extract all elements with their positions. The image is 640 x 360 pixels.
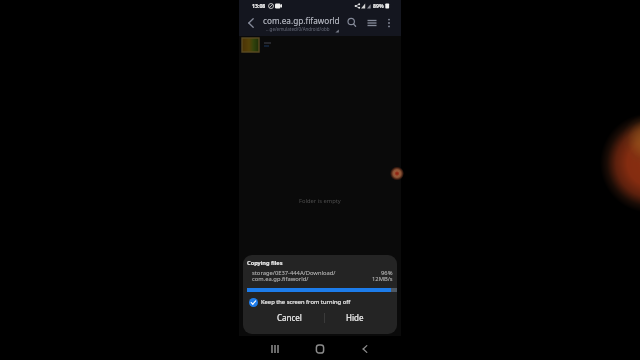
staticText: 96% [381,269,393,277]
button[interactable]: Recents [267,341,283,357]
button[interactable]: More options [380,14,398,32]
button[interactable]: Search [343,14,361,32]
staticText: 12MB/s [372,275,393,283]
button[interactable]: Cancel [257,306,321,328]
staticText: 13:08 [252,2,266,9]
staticText: com.ea.gp.fifaworld [263,15,340,26]
staticText: Hide [346,312,364,323]
button[interactable]: Hide [325,306,385,328]
button[interactable]: Back [242,14,260,32]
staticText: Folder is empty [299,197,341,205]
staticText: 89% [373,2,384,9]
staticText: Keep the screen from turning off [261,298,351,306]
button[interactable]: Change view [363,14,381,32]
button[interactable]: Back [357,341,373,357]
staticText: Copying files [247,259,283,267]
staticText: com.ea.gp.fifaworld/ [252,275,309,283]
button[interactable]: Home [312,341,328,357]
staticText: ...ge/emulated/0/Android/obb [266,26,330,32]
staticText: Cancel [277,312,302,323]
button[interactable]: Keep the screen from turning off [249,295,391,309]
staticText: storage/0E37-444A/Download/ [252,269,336,277]
